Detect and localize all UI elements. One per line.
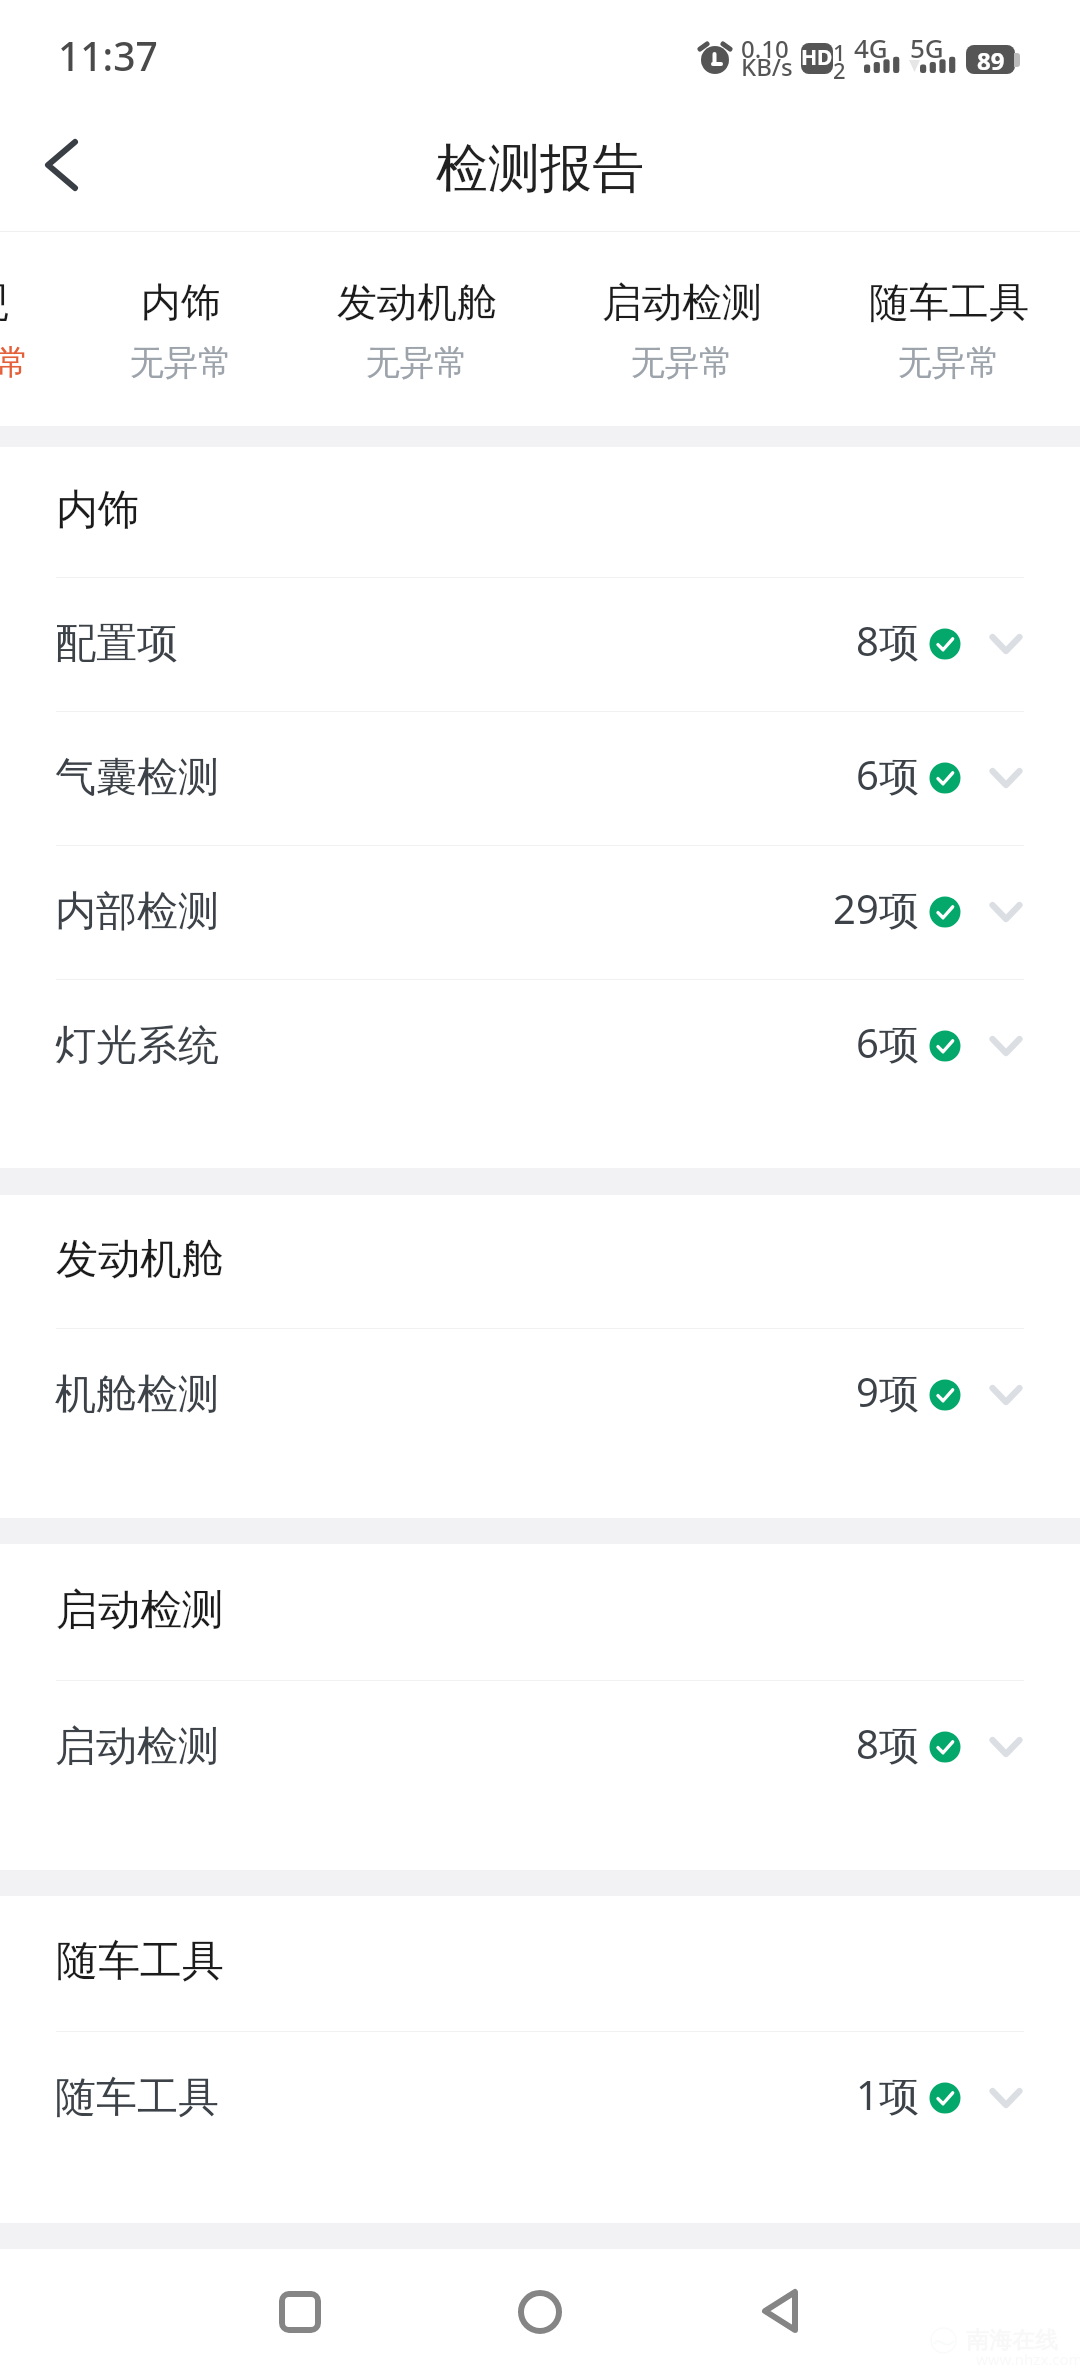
staticText: 内部检测 (55, 886, 219, 938)
button[interactable]: 内部检测 (0, 845, 1080, 979)
staticText: KB/s (741, 50, 793, 83)
staticText: 无异常 (130, 341, 232, 384)
staticText: 气囊检测 (55, 752, 219, 804)
staticText: 1 (833, 37, 846, 67)
staticText: 随车工具 (55, 2072, 219, 2124)
staticText: 随车工具 (869, 277, 1029, 327)
staticText: 配置项 (55, 618, 178, 670)
button[interactable]: 机舱检测 (0, 1328, 1080, 1462)
button[interactable]: Back (27, 131, 95, 199)
staticText: 9项 (856, 1364, 919, 1419)
staticText: 89 (977, 45, 1005, 73)
staticText: 5G (910, 30, 944, 65)
staticText: 4G (854, 30, 888, 65)
staticText: 启动检测 (55, 1721, 219, 1773)
staticText: 8项 (856, 1716, 919, 1771)
button[interactable]: 配置项 (0, 577, 1080, 711)
staticText: 11:37 (58, 29, 158, 82)
staticText: 6项 (856, 1015, 919, 1070)
staticText: 29项 (833, 881, 919, 936)
button[interactable]: 外观 (0, 232, 88, 426)
button[interactable]: 内饰 (71, 232, 291, 426)
button[interactable]: 启动检测 (572, 232, 792, 426)
staticText: 灯光系统 (55, 1020, 219, 1072)
button[interactable]: 启动检测 (0, 1680, 1080, 1814)
staticText: 内饰 (56, 484, 140, 537)
staticText: 检测报告 (436, 136, 644, 202)
staticText: 南海在线 (966, 2326, 1058, 2355)
staticText: 无异常 (631, 341, 733, 384)
staticText: 内饰 (141, 277, 221, 327)
staticText: 机舱检测 (55, 1369, 219, 1421)
button[interactable]: 灯光系统 (0, 979, 1080, 1113)
staticText: 启动检测 (602, 277, 762, 327)
staticText: 2 (833, 55, 846, 85)
button[interactable]: 随车工具 (0, 2031, 1080, 2165)
staticText: HD (801, 43, 833, 72)
staticText: 发动机舱 (56, 1233, 224, 1286)
staticText: 发动机舱 (337, 277, 497, 327)
staticText: 1项 (856, 2067, 919, 2122)
button[interactable]: Back (730, 2261, 830, 2361)
staticText: 8项 (856, 613, 919, 668)
staticText: 无异常 (366, 341, 468, 384)
button[interactable]: Home (490, 2262, 590, 2362)
button[interactable]: 发动机舱 (307, 232, 527, 426)
staticText: 启动检测 (56, 1584, 224, 1637)
button[interactable]: 气囊检测 (0, 711, 1080, 845)
staticText: 外观 (0, 277, 9, 327)
button[interactable]: Recents (250, 2262, 350, 2362)
staticText: 无异常 (898, 341, 1000, 384)
button[interactable]: 随车工具 (839, 232, 1059, 426)
staticText: 有异常 (0, 341, 29, 384)
staticText: 随车工具 (56, 1935, 224, 1988)
staticText: 6项 (856, 747, 919, 802)
staticText: 0.10 (741, 32, 789, 65)
